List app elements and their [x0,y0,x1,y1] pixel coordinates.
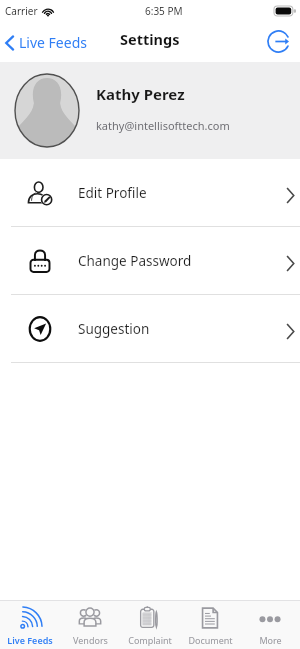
staticText: 6:35 PM [145,4,183,18]
button[interactable]: Live Feeds [0,601,60,649]
button[interactable]: Logout [266,25,300,59]
button[interactable]: Suggestion [0,295,300,362]
staticText: kathy@intellisofttech.com [96,118,230,133]
button[interactable]: Change Password [0,227,300,294]
button[interactable]: Document [180,601,240,649]
staticText: Complaint [128,634,172,646]
button[interactable]: Edit Profile [0,159,300,226]
button[interactable]: Complaint [120,601,180,649]
staticText: Live Feeds [7,634,53,646]
staticText: Change Password [78,252,192,270]
staticText: Settings [120,29,180,49]
staticText: Document [188,634,233,646]
button[interactable]: More [240,601,300,649]
staticText: Live Feeds [19,33,87,52]
staticText: More [259,634,282,646]
button[interactable]: Live Feeds [0,28,93,57]
staticText: Carrier [5,4,38,18]
button[interactable]: Vendors [60,601,120,649]
staticText: Suggestion [78,320,150,338]
staticText: Kathy Perez [96,84,185,104]
staticText: Edit Profile [78,184,147,202]
staticText: Vendors [73,634,108,646]
